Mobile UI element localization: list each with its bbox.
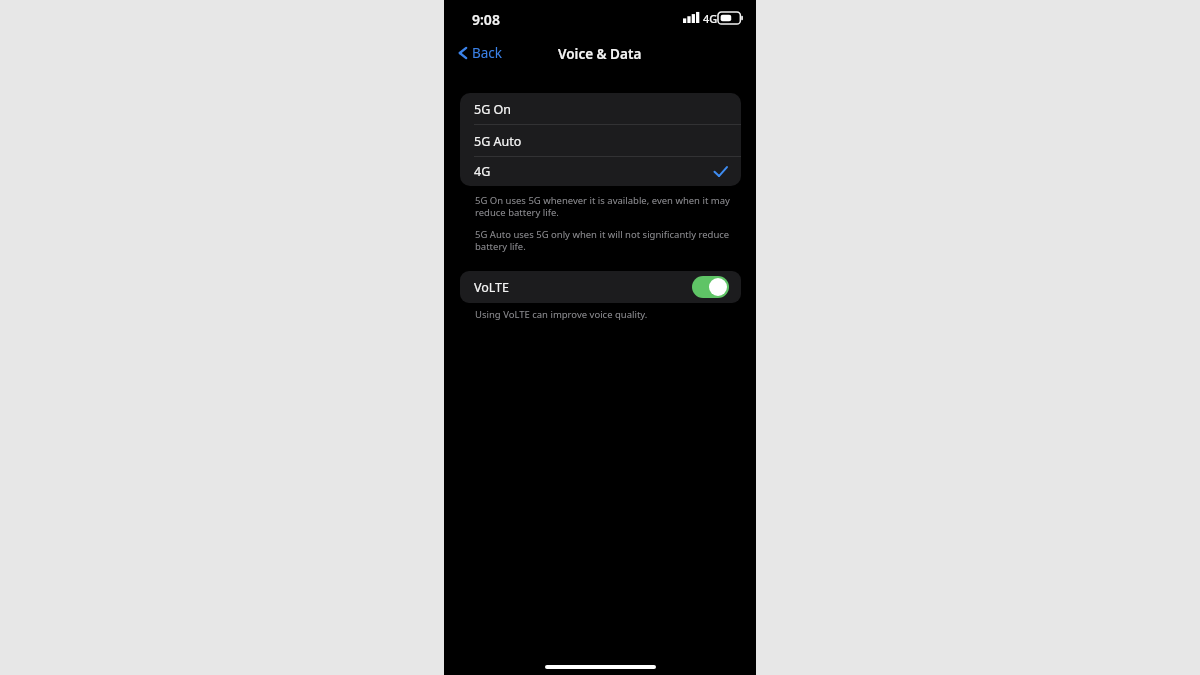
staticText: 5G On uses 5G whenever it is available, … bbox=[475, 194, 737, 219]
staticText: Using VoLTE can improve voice quality. bbox=[475, 308, 648, 321]
staticText: Voice & Data bbox=[558, 45, 642, 63]
button[interactable]: 4G bbox=[460, 157, 741, 186]
staticText: 5G Auto bbox=[474, 133, 522, 150]
staticText: Back bbox=[472, 44, 503, 62]
button[interactable]: Back bbox=[454, 40, 507, 66]
staticText: 4G bbox=[703, 11, 718, 26]
staticText: VoLTE bbox=[474, 279, 510, 296]
staticText: 5G Auto uses 5G only when it will not si… bbox=[475, 228, 737, 253]
button[interactable]: 5G Auto bbox=[460, 125, 741, 157]
staticText: 9:08 bbox=[472, 10, 500, 29]
button[interactable]: VoLTE toggle, on bbox=[692, 276, 729, 298]
staticText: 5G On bbox=[474, 101, 511, 118]
staticText: 4G bbox=[474, 163, 491, 180]
button[interactable]: 5G On bbox=[460, 93, 741, 125]
button[interactable]: VoLTE bbox=[460, 271, 741, 303]
